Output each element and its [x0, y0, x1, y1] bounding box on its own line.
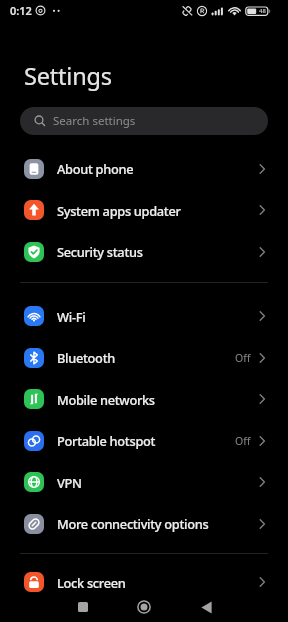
staticText: Off [235, 434, 251, 448]
staticText: Portable hotspot [57, 432, 156, 449]
staticText: VPN [57, 474, 82, 491]
button[interactable]: Wi-Fi [0, 295, 288, 337]
staticText: Wi-Fi [57, 308, 86, 325]
button[interactable]: System apps updater [0, 189, 288, 231]
staticText: About phone [57, 160, 134, 177]
button[interactable] [132, 595, 156, 619]
staticText: Search settings [53, 113, 136, 129]
staticText: Bluetooth [57, 349, 115, 366]
staticText: More connectivity options [57, 515, 209, 532]
button[interactable]: About phone [0, 148, 288, 189]
button[interactable] [71, 595, 95, 619]
staticText: Mobile networks [57, 391, 155, 408]
button[interactable]: Mobile networks [0, 378, 288, 420]
button[interactable]: Search settings [20, 107, 268, 135]
button[interactable]: Security status [0, 231, 288, 272]
button[interactable] [194, 595, 218, 619]
staticText: Lock screen [57, 574, 126, 591]
button[interactable]: Lock screen [0, 561, 288, 603]
button[interactable]: More connectivity options [0, 503, 288, 544]
staticText: System apps updater [57, 202, 181, 219]
button[interactable]: VPN [0, 461, 288, 503]
staticText: Off [235, 351, 251, 365]
staticText: 48 [259, 7, 266, 15]
button[interactable]: Portable hotspot [0, 420, 288, 461]
staticText: Settings [24, 60, 112, 92]
button[interactable]: Bluetooth [0, 337, 288, 378]
staticText: 0:12 [10, 3, 32, 18]
staticText: Security status [57, 243, 143, 260]
